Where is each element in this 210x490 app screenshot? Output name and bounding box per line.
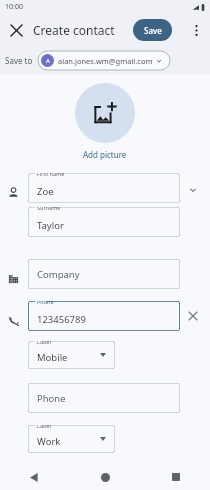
staticText: Label [37,425,51,429]
staticText: Taylor [37,219,64,232]
button[interactable]: Recent apps [166,467,186,487]
staticText: Mobile [37,351,68,364]
staticText: Zoe [37,185,54,198]
staticText: Company [37,268,80,281]
staticText: Surname [37,207,61,211]
staticText: 123456789 [37,313,86,326]
button[interactable]: Expand name fields [185,182,201,198]
button[interactable]: Phone [28,301,180,331]
staticText: alan.jones.wm@gmail.com [58,56,153,66]
button[interactable]: Company [28,259,180,289]
button[interactable]: Phone [28,383,180,413]
button[interactable]: Label [28,341,115,369]
staticText: A [46,57,50,65]
button[interactable]: A [38,51,170,70]
button[interactable]: Surname [28,207,180,237]
button[interactable]: Clear phone number [185,308,201,324]
button[interactable]: Save [133,19,172,41]
staticText: Create contact [33,22,115,38]
button[interactable]: Close [4,18,28,42]
staticText: Label [37,341,51,345]
button[interactable]: First name [28,173,180,203]
button[interactable]: Add picture [75,83,135,160]
staticText: 10:00 [5,2,23,12]
staticText: Add picture [83,149,127,160]
staticText: First name [37,173,65,177]
button[interactable]: Label [28,425,115,453]
button[interactable]: Home [95,467,115,487]
staticText: Save [144,25,162,36]
button[interactable]: More options [185,19,207,41]
staticText: Save to [5,55,33,66]
button[interactable]: Back [24,467,44,487]
staticText: Phone [37,392,66,405]
staticText: Work [37,435,61,448]
staticText: Phone [37,301,54,305]
